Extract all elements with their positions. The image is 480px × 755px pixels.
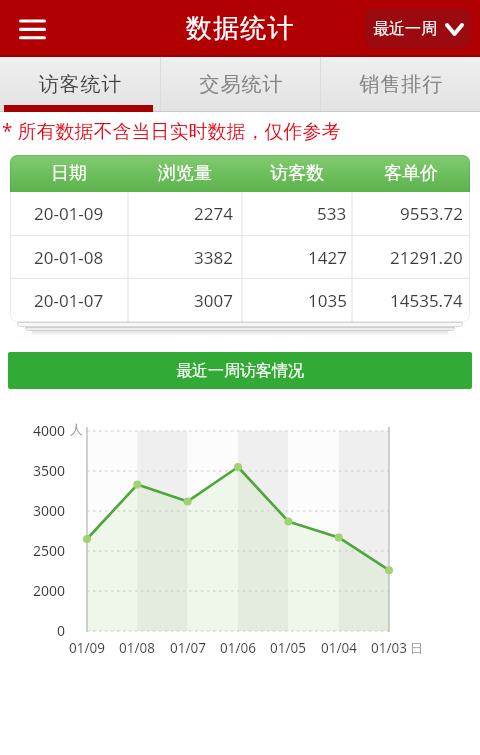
staticText: 最近一周 [373, 19, 437, 39]
staticText: 1427 [308, 246, 347, 269]
staticText: 1035 [308, 289, 347, 312]
staticText: 01/06 [220, 639, 256, 657]
button[interactable]: 20-01-07 [10, 279, 470, 322]
button[interactable]: 销售排行 [321, 57, 480, 112]
staticText: 日 [410, 640, 423, 656]
staticText: 访客数 [270, 162, 324, 185]
button[interactable] [10, 7, 54, 51]
button[interactable]: 交易统计 [161, 57, 320, 112]
button[interactable]: 最近一周访客情况 [8, 352, 472, 389]
staticText: 0 [57, 621, 66, 640]
staticText: 数据统计 [186, 12, 295, 45]
staticText: 20-01-09 [34, 202, 104, 225]
staticText: 14535.74 [390, 289, 463, 312]
staticText: 20-01-07 [34, 289, 104, 312]
staticText: 20-01-08 [34, 246, 104, 269]
staticText: 21291.20 [390, 246, 463, 269]
staticText: 3500 [33, 461, 66, 480]
staticText: 3007 [194, 289, 233, 312]
staticText: 2500 [33, 541, 66, 560]
staticText: 3382 [194, 246, 233, 269]
staticText: 销售排行 [359, 72, 443, 97]
staticText: 01/03 [371, 639, 407, 657]
staticText: 最近一周访客情况 [176, 361, 304, 381]
staticText: 2000 [33, 581, 66, 600]
staticText: 01/05 [270, 639, 306, 657]
staticText: 4000 [33, 421, 66, 440]
staticText: 01/07 [170, 639, 206, 657]
staticText: 3000 [33, 501, 66, 520]
staticText: * 所有数据不含当日实时数据，仅作参考 [2, 118, 341, 144]
staticText: 日期 [51, 162, 87, 185]
staticText: 01/08 [119, 639, 155, 657]
staticText: 2274 [194, 202, 233, 225]
staticText: 浏览量 [158, 162, 212, 185]
staticText: 人 [70, 421, 83, 437]
staticText: 客单价 [384, 162, 438, 185]
staticText: 01/09 [69, 639, 105, 657]
button[interactable]: 20-01-08 [10, 236, 470, 278]
staticText: 9553.72 [400, 202, 463, 225]
button[interactable]: 访客统计 [0, 57, 160, 112]
staticText: 01/04 [321, 639, 357, 657]
staticText: 533 [317, 202, 347, 225]
staticText: 交易统计 [199, 72, 283, 97]
button[interactable]: 20-01-09 [10, 192, 470, 235]
button[interactable]: 最近一周 [365, 9, 471, 48]
staticText: 访客统计 [38, 72, 122, 97]
